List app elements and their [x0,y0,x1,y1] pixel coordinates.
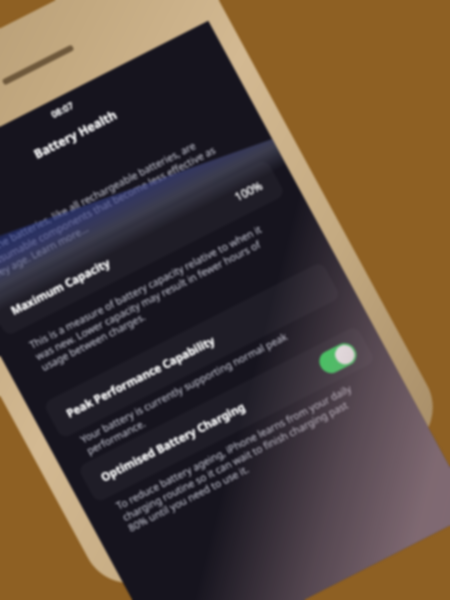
staticText: Your battery is currently supporting nor… [71,242,335,527]
button[interactable]: Peak Performance Capability [32,179,351,522]
staticText: Peak Performance Capability [59,289,222,465]
staticText: 08:07 [45,92,79,127]
staticText: Battery Health [27,82,124,186]
staticText: Maximum Capacity [4,226,117,347]
button[interactable]: Optimised Battery Charging toggle [309,329,366,387]
button[interactable]: Optimised Battery Charging [67,243,386,586]
staticText: Optimised Battery Charging [94,357,252,527]
staticText: To reduce battery ageing, iPhone learns … [104,309,380,600]
staticText: 100% [228,170,269,212]
button[interactable]: Maximum Capacity [0,76,296,419]
staticText: This is a measure of battery capacity re… [17,148,293,444]
staticText: iPhone batteries, like all rechargeable … [0,57,241,353]
